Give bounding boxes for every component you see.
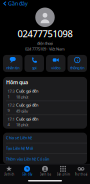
button[interactable]: Bàn phím	[54, 164, 72, 176]
button[interactable]: Thêm vào Liên hệ Có sẵn	[3, 154, 87, 164]
staticText: 49 giây	[16, 108, 28, 113]
staticText: 02477751098	[17, 27, 72, 40]
button[interactable]: 17:31	[3, 87, 87, 101]
button[interactable]: Gần đây	[18, 164, 36, 176]
button[interactable]: Gần đây	[0, 0, 28, 9]
staticText: thông tin	[70, 65, 84, 70]
staticText: Thư thoại	[74, 173, 87, 176]
staticText: điện thoại	[37, 40, 53, 46]
button[interactable]: nhắn tin	[3, 55, 22, 72]
button[interactable]: video	[46, 55, 65, 72]
button[interactable]: Thư thoại	[72, 164, 90, 176]
staticText: Cuộc gọi đến	[16, 116, 38, 121]
staticText: Bàn phím	[56, 173, 69, 176]
staticText: 024 7775109 · Việt Nam	[25, 46, 65, 51]
button[interactable]: Ưa thích	[0, 164, 18, 176]
staticText: Tạo Liên hệ Mới	[6, 146, 33, 151]
button[interactable]: 17:29	[3, 101, 87, 115]
button[interactable]: gọi	[24, 55, 44, 72]
button[interactable]: 17:14	[3, 115, 87, 129]
staticText: 17:31	[7, 89, 14, 99]
staticText: gọi	[32, 65, 37, 70]
staticText: Chia sẻ Liên hệ	[6, 135, 32, 140]
staticText: Ưa thích	[3, 173, 14, 176]
staticText: nhắn tin	[6, 65, 19, 70]
staticText: Thêm vào Liên hệ Có sẵn	[6, 156, 49, 161]
staticText: Cuộc gọi đến	[16, 102, 38, 108]
staticText: Gần đây	[22, 173, 32, 176]
staticText: Danh bạ	[39, 173, 50, 176]
staticText: 18 phút	[16, 94, 28, 100]
staticText: Gần đây	[8, 0, 28, 7]
staticText: 17:29	[7, 103, 14, 113]
staticText: Hôm qua	[6, 78, 28, 86]
staticText: Cuộc gọi đến	[16, 88, 38, 94]
button[interactable]: Danh bạ	[36, 164, 54, 176]
staticText: 18 phút	[16, 122, 28, 127]
staticText: video	[51, 65, 60, 70]
staticText: 17:14	[7, 116, 14, 127]
button[interactable]: Tạo Liên hệ Mới	[3, 143, 87, 153]
button[interactable]: thông tin	[67, 55, 87, 72]
button[interactable]: Chia sẻ Liên hệ	[3, 133, 87, 143]
